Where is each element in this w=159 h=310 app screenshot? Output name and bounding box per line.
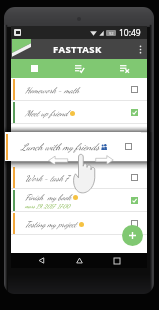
staticText: mars 19, 2017 17:00 (25, 203, 70, 210)
staticText: Work - task 7 (25, 173, 69, 183)
button[interactable]: Recents (109, 253, 124, 268)
button[interactable]: Add task (122, 225, 143, 246)
staticText: Testing my project (25, 219, 77, 229)
button[interactable]: Cancelled tasks (102, 59, 147, 78)
button[interactable]: Lunch with my friends (5, 132, 141, 161)
button[interactable]: Meet up friend (11, 101, 147, 124)
button[interactable]: Work - task 7 (11, 166, 147, 189)
button[interactable]: All tasks (11, 59, 57, 78)
staticText: Finish my book (25, 192, 71, 202)
staticText: FASTTASK (53, 43, 102, 56)
staticText: 92 (109, 31, 114, 36)
staticText: Homework - math (25, 85, 80, 95)
button[interactable]: Done tasks (57, 59, 102, 78)
button[interactable]: Home (72, 253, 87, 268)
button[interactable]: Finish my book (11, 189, 147, 212)
button[interactable]: More options (133, 39, 147, 59)
staticText: Lunch with my friends (21, 141, 99, 152)
button[interactable]: Back (34, 253, 49, 268)
staticText: 10:49 (119, 27, 141, 39)
button[interactable]: Testing my project (11, 212, 147, 235)
staticText: Meet up friend (25, 108, 68, 118)
button[interactable]: Homework - math (11, 78, 147, 101)
